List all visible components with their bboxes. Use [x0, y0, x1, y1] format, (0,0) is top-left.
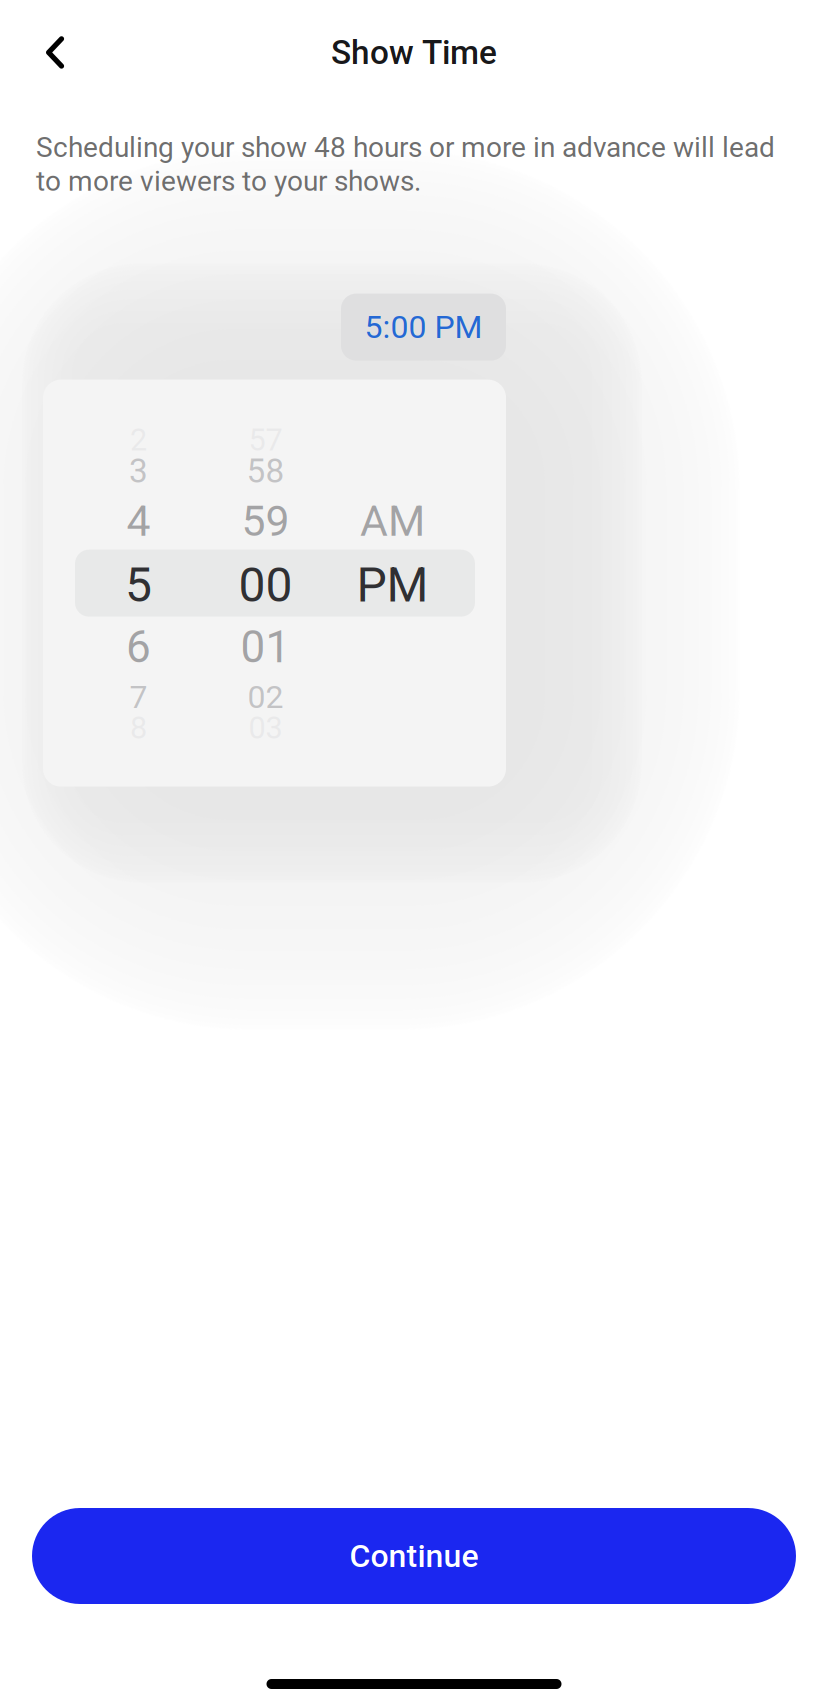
staticText: 5	[125, 557, 152, 613]
staticText: 57	[248, 422, 282, 458]
staticText: 5:00 PM	[364, 308, 482, 346]
staticText: 6	[126, 621, 151, 673]
staticText: 2	[130, 422, 147, 458]
staticText: 01	[240, 621, 290, 673]
staticText: 59	[241, 496, 289, 546]
button[interactable]: Time picker, 5:00 PM	[43, 380, 506, 787]
staticText: 00	[238, 557, 292, 613]
staticText: AM	[360, 496, 425, 546]
staticText: 4	[126, 496, 150, 546]
staticText: Continue	[349, 1537, 478, 1575]
staticText: 03	[248, 710, 282, 746]
button[interactable]: Back	[21, 16, 89, 88]
staticText: PM	[356, 557, 428, 613]
staticText: Show Time	[331, 33, 497, 72]
staticText: 58	[246, 452, 284, 491]
staticText: 7	[129, 678, 147, 716]
staticText: 8	[130, 710, 147, 746]
staticText: Scheduling your show 48 hours or more in…	[36, 131, 775, 198]
staticText: 3	[129, 452, 148, 491]
button[interactable]: 5:00 PM	[341, 294, 506, 361]
button[interactable]: Continue	[32, 1508, 796, 1604]
staticText: 02	[247, 678, 283, 716]
